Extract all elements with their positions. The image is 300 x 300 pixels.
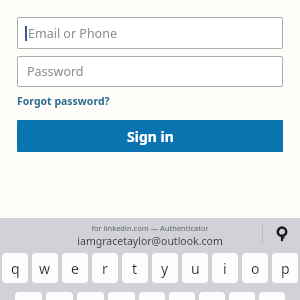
button[interactable]: q	[2, 253, 28, 283]
staticText: u	[191, 259, 200, 278]
button[interactable]: i	[212, 253, 238, 283]
staticText: y	[161, 259, 169, 278]
staticText: Forgot password?	[17, 94, 110, 108]
staticText: q	[11, 259, 20, 278]
staticText: e	[71, 259, 79, 278]
button[interactable]: p	[272, 253, 298, 283]
button[interactable]: w	[32, 253, 58, 283]
button[interactable]: Sign in	[17, 120, 283, 152]
button[interactable]: a	[15, 292, 42, 300]
staticText: o	[251, 259, 260, 278]
staticText: Email or Phone	[28, 25, 117, 42]
button[interactable]: h	[169, 292, 195, 300]
staticText: for linkedin.com — Authenticator	[91, 223, 209, 233]
staticText: Sign in	[127, 127, 174, 146]
button[interactable]: Forgot password?	[17, 92, 110, 110]
button[interactable]: s	[46, 292, 73, 300]
button[interactable]: g	[139, 292, 165, 300]
staticText: i	[223, 259, 227, 278]
staticText: p	[281, 259, 290, 278]
button[interactable]: f	[108, 292, 135, 300]
button[interactable]: r	[92, 253, 118, 283]
staticText: t	[132, 259, 138, 278]
button[interactable]: Password	[17, 56, 283, 87]
staticText: r	[102, 259, 108, 278]
button[interactable]: o	[242, 253, 268, 283]
staticText: iamgracetaylor@outlook.com	[77, 234, 223, 248]
button[interactable]: Email or Phone	[17, 17, 283, 49]
button[interactable]: y	[152, 253, 178, 283]
staticText: w	[39, 259, 51, 278]
button[interactable]: e	[62, 253, 88, 283]
button[interactable]: Passwords	[272, 224, 292, 244]
button[interactable]: d	[77, 292, 104, 300]
button[interactable]: l	[259, 292, 285, 300]
button[interactable]: for linkedin.com — Authenticator	[0, 221, 300, 251]
button[interactable]: u	[182, 253, 208, 283]
button[interactable]: t	[122, 253, 148, 283]
staticText: Password	[27, 63, 84, 80]
button[interactable]: k	[229, 292, 255, 300]
button[interactable]: j	[199, 292, 225, 300]
